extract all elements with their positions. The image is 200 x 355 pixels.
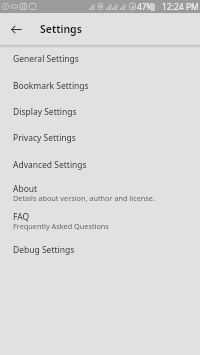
staticText: FAQ — [13, 211, 30, 223]
button[interactable]: Back — [3, 16, 29, 42]
staticText: Debug Settings — [13, 244, 75, 256]
staticText: General Settings — [13, 53, 79, 65]
staticText: Details about version, author and licens… — [13, 193, 155, 203]
button[interactable]: Debug Settings — [0, 236, 200, 263]
staticText: 12:24 PM — [162, 1, 199, 13]
button[interactable]: Bookmark Settings — [0, 72, 200, 99]
button[interactable]: Advanced Settings — [0, 151, 200, 178]
staticText: Frequently Asked Questions — [13, 221, 109, 231]
button[interactable]: About — [0, 179, 200, 208]
staticText: About — [13, 183, 38, 195]
staticText: Bookmark Settings — [13, 80, 89, 92]
staticText: Advanced Settings — [13, 159, 87, 171]
button[interactable]: Privacy Settings — [0, 124, 200, 151]
staticText: Display Settings — [13, 106, 77, 118]
button[interactable]: Display Settings — [0, 99, 200, 125]
button[interactable]: FAQ — [0, 208, 200, 236]
staticText: Settings — [40, 22, 82, 36]
button[interactable]: General Settings — [0, 45, 200, 72]
staticText: 47% — [137, 1, 154, 12]
staticText: Privacy Settings — [13, 132, 76, 144]
